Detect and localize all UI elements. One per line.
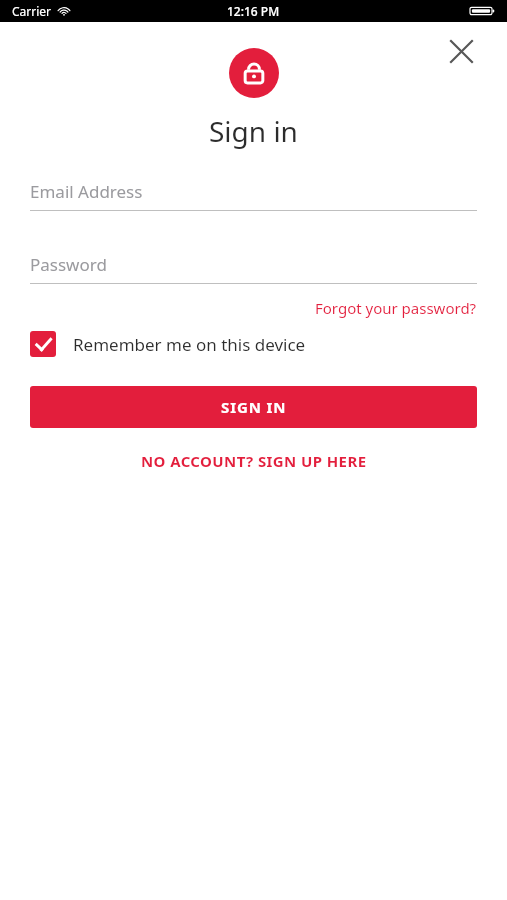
button[interactable]: Close — [439, 29, 483, 73]
staticText: Password — [30, 253, 107, 276]
button[interactable]: SIGN IN — [30, 386, 477, 428]
button[interactable]: Password — [30, 250, 477, 284]
staticText: NO ACCOUNT? SIGN UP HERE — [141, 451, 367, 471]
button[interactable]: Remember me on this device — [30, 331, 477, 357]
button[interactable]: Email Address — [30, 177, 477, 211]
staticText: SIGN IN — [221, 397, 287, 417]
staticText: Remember me on this device — [73, 333, 306, 356]
staticText: Sign in — [209, 112, 298, 150]
staticText: Forgot your password? — [315, 298, 477, 318]
staticText: 12:16 PM — [227, 3, 280, 19]
button[interactable]: Forgot your password? — [315, 295, 477, 321]
staticText: Carrier — [12, 3, 52, 19]
button[interactable]: NO ACCOUNT? SIGN UP HERE — [129, 446, 379, 476]
staticText: Email Address — [30, 180, 143, 203]
